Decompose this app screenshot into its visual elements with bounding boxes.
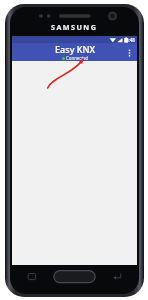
staticText: Connected <box>66 55 89 61</box>
staticText: SAMSUNG <box>51 22 98 32</box>
button[interactable]: More options <box>122 45 137 60</box>
staticText: 6:48 <box>126 37 135 43</box>
staticText: Easy KNX <box>55 43 95 55</box>
